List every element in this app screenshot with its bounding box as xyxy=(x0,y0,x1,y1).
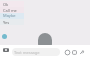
button[interactable]: Emoji xyxy=(64,49,71,56)
staticText: Ok xyxy=(3,2,9,7)
staticText: Text message xyxy=(14,50,40,55)
button[interactable]: Contact avatar xyxy=(2,34,7,39)
button[interactable]: Text message xyxy=(12,48,60,56)
button[interactable]: Stickers xyxy=(71,49,78,56)
staticText: Call me xyxy=(3,8,17,13)
staticText: Maybe later xyxy=(3,13,24,19)
button[interactable]: Camera xyxy=(2,46,10,54)
button[interactable]: Call me xyxy=(0,7,24,13)
button[interactable]: Maybe later xyxy=(0,13,24,19)
button[interactable]: Attach file xyxy=(78,49,85,56)
button[interactable]: Yes xyxy=(0,19,24,25)
button[interactable]: Ok xyxy=(0,1,24,7)
staticText: Yes xyxy=(3,20,10,25)
